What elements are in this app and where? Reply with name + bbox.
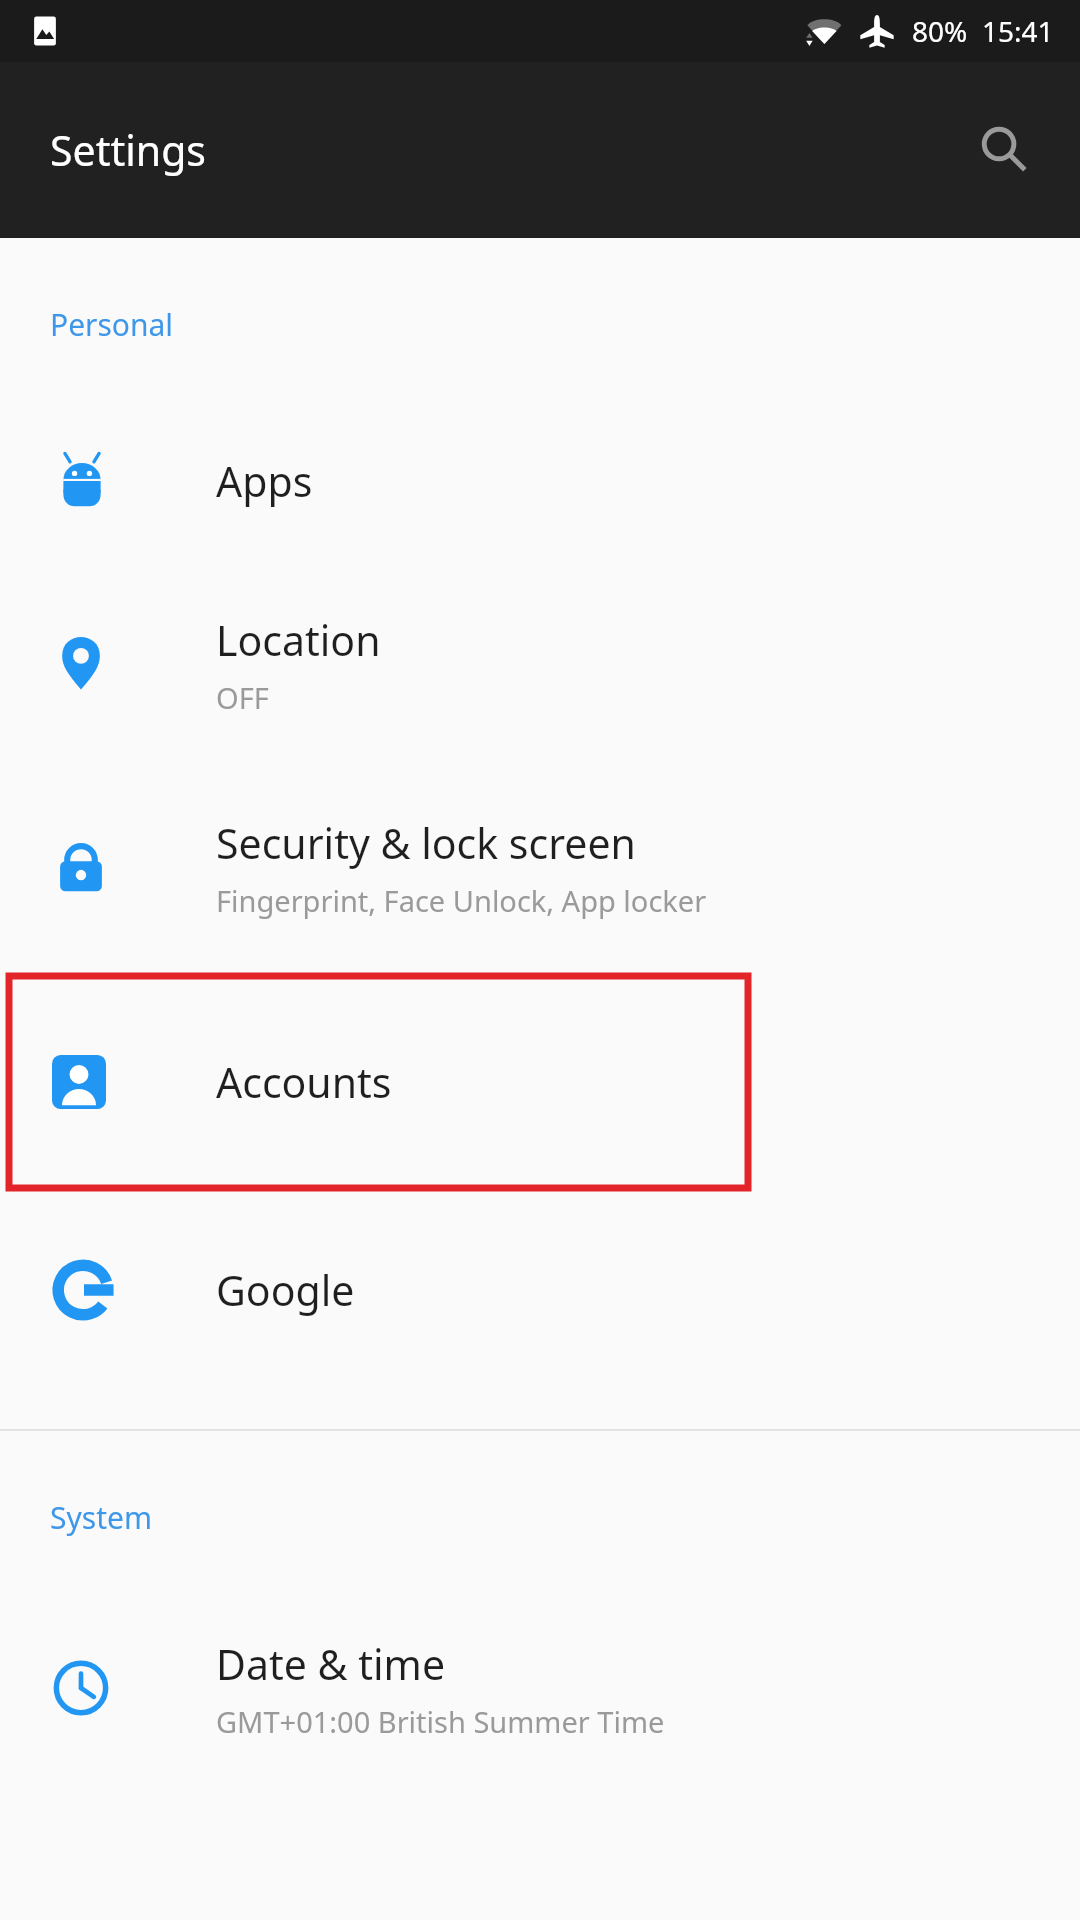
staticText: 15:41 [982,12,1054,50]
staticText: Personal [50,304,174,345]
staticText: Security & lock screen [216,815,636,871]
button[interactable]: Security & lock screen [0,761,1080,973]
button[interactable]: Location [0,567,1080,761]
button[interactable]: Google [0,1191,1080,1389]
staticText: Fingerprint, Face Unlock, App locker [216,881,707,920]
staticText: Date & time [216,1636,446,1692]
button[interactable]: Apps [0,395,1080,567]
button[interactable]: Date & time [0,1588,1080,1788]
staticText: Settings [50,122,207,178]
staticText: Apps [216,453,313,509]
staticText: GMT+01:00 British Summer Time [216,1702,665,1741]
staticText: OFF [216,678,269,717]
button[interactable]: Search [954,100,1054,200]
staticText: 80% [912,12,968,50]
staticText: Location [216,612,381,668]
staticText: Accounts [216,1054,392,1110]
staticText: Google [216,1262,355,1318]
button[interactable]: Accounts [0,973,1080,1191]
staticText: System [50,1497,152,1538]
